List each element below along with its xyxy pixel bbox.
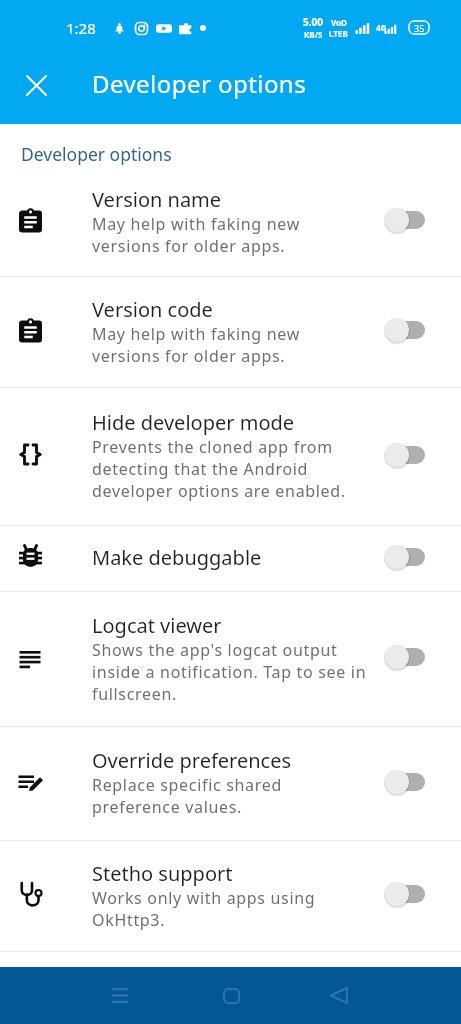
staticText: Override preferences bbox=[92, 747, 292, 774]
staticText: Hide developer mode bbox=[92, 409, 295, 436]
staticText: Version name bbox=[92, 186, 222, 213]
staticText: May help with faking new bbox=[92, 213, 300, 235]
button[interactable]: Logcat viewer bbox=[0, 592, 461, 726]
staticText: Logcat viewer bbox=[92, 612, 222, 639]
button[interactable]: Home bbox=[207, 967, 255, 1024]
button[interactable]: Recents bbox=[96, 967, 144, 1024]
staticText: developer options are enabled. bbox=[92, 480, 346, 502]
staticText: preference values. bbox=[92, 796, 243, 818]
staticText: Replace specific shared bbox=[92, 774, 282, 796]
button[interactable]: Version code bbox=[0, 277, 461, 387]
staticText: LTEB bbox=[329, 28, 348, 39]
staticText: Shows the app's logcat output bbox=[92, 639, 338, 661]
staticText: Developer options bbox=[21, 142, 172, 166]
staticText: Version code bbox=[92, 296, 213, 323]
staticText: Make debuggable bbox=[92, 544, 262, 571]
staticText: VoD bbox=[331, 17, 347, 28]
staticText: Developer options bbox=[92, 67, 307, 100]
staticText: inside a notification. Tap to see in bbox=[92, 661, 367, 683]
staticText: Prevents the cloned app from bbox=[92, 436, 333, 458]
button[interactable]: Version name bbox=[0, 168, 461, 276]
staticText: 5.00 bbox=[303, 15, 323, 29]
button[interactable]: Stetho support bbox=[0, 841, 461, 951]
staticText: Works only with apps using bbox=[92, 887, 316, 909]
staticText: versions for older apps. bbox=[92, 235, 286, 257]
staticText: May help with faking new bbox=[92, 323, 300, 345]
staticText: KB/S bbox=[304, 29, 323, 40]
staticText: OkHttp3. bbox=[92, 909, 166, 931]
button[interactable]: Make debuggable bbox=[0, 526, 461, 591]
staticText: versions for older apps. bbox=[92, 345, 286, 367]
button[interactable]: Hide developer mode bbox=[0, 388, 461, 525]
staticText: detecting that the Android bbox=[92, 458, 309, 480]
staticText: fullscreen. bbox=[92, 683, 177, 705]
staticText: 1:28 bbox=[66, 18, 96, 38]
button[interactable]: Back bbox=[315, 967, 363, 1024]
staticText: 4G bbox=[376, 22, 387, 33]
staticText: 35 bbox=[414, 22, 425, 34]
staticText: Stetho support bbox=[92, 860, 233, 887]
button[interactable]: Override preferences bbox=[0, 727, 461, 840]
button[interactable]: Close bbox=[0, 51, 72, 120]
